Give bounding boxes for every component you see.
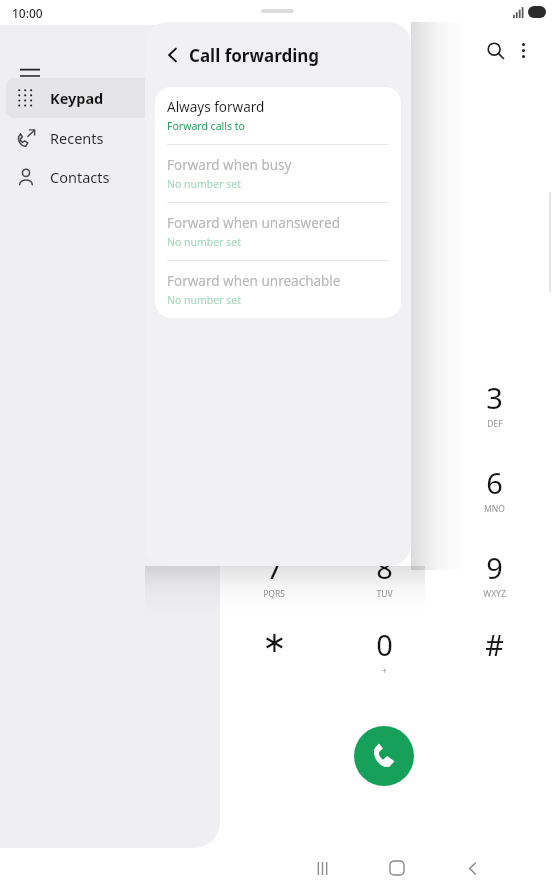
button[interactable]: Forward when busy xyxy=(155,145,401,202)
button[interactable]: 5 xyxy=(342,463,426,527)
staticText: MNO xyxy=(484,503,505,515)
staticText: 10:00 xyxy=(12,5,43,21)
staticText: Contacts xyxy=(50,167,110,187)
staticText: + xyxy=(382,665,387,677)
button[interactable]: Keypad xyxy=(6,78,214,118)
staticText: 7 xyxy=(266,548,283,587)
button[interactable]: 0 xyxy=(342,625,426,689)
staticText: Recents xyxy=(50,128,104,148)
staticText: Forward calls to xyxy=(167,119,245,133)
staticText: TUV xyxy=(376,588,393,600)
staticText: 8 xyxy=(376,548,393,587)
button[interactable]: Recent apps xyxy=(308,854,336,882)
button[interactable]: More options xyxy=(506,33,540,67)
staticText: Always forward xyxy=(167,98,265,116)
button[interactable]: 7 xyxy=(232,548,316,612)
button[interactable]: Search xyxy=(478,33,512,67)
staticText: No number set xyxy=(167,293,242,307)
button[interactable]: 9 xyxy=(452,548,536,612)
staticText: WXYZ xyxy=(483,588,506,600)
button[interactable]: Always forward xyxy=(155,87,401,144)
staticText: 6 xyxy=(486,463,503,502)
staticText: Forward when unreachable xyxy=(167,272,341,290)
staticText: ∗ xyxy=(262,625,287,659)
button[interactable]: Back xyxy=(458,854,486,882)
button[interactable]: # xyxy=(452,625,536,689)
button[interactable]: 2 xyxy=(342,378,426,442)
staticText: No number set xyxy=(167,177,242,191)
staticText: PQRS xyxy=(263,588,285,600)
staticText: Forward when busy xyxy=(167,156,292,174)
staticText: Keypad xyxy=(50,88,104,108)
staticText: Call forwarding xyxy=(189,44,320,67)
staticText: No number set xyxy=(167,235,242,249)
button[interactable]: Forward when unreachable xyxy=(155,261,401,318)
button[interactable]: Forward when unanswered xyxy=(155,203,401,260)
button[interactable]: 6 xyxy=(452,463,536,527)
button[interactable]: Contacts xyxy=(6,157,214,197)
staticText: DEF xyxy=(487,418,503,430)
button[interactable]: 3 xyxy=(452,378,536,442)
button[interactable]: Menu xyxy=(8,54,52,98)
button[interactable]: Back xyxy=(155,37,191,73)
button[interactable]: Call xyxy=(354,726,414,786)
button[interactable]: Home xyxy=(383,854,411,882)
button[interactable]: 8 xyxy=(342,548,426,612)
staticText: 3 xyxy=(486,378,503,417)
button[interactable]: Recents xyxy=(6,118,214,158)
staticText: 0 xyxy=(376,625,393,664)
button[interactable]: ∗ xyxy=(232,625,316,689)
staticText: 9 xyxy=(486,548,503,587)
staticText: Forward when unanswered xyxy=(167,214,340,232)
staticText: # xyxy=(485,625,504,664)
